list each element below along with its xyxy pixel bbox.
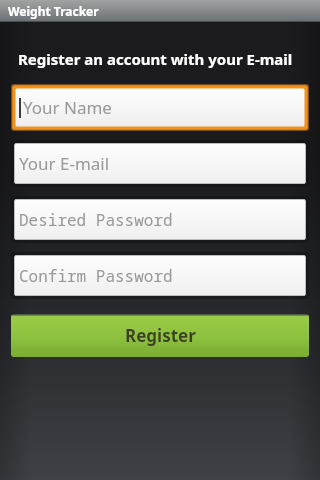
button[interactable]: Your E-mail xyxy=(11,140,309,187)
button[interactable]: Desired Password xyxy=(11,196,309,243)
staticText: Your E-mail xyxy=(19,152,110,175)
staticText: Your Name xyxy=(23,96,112,119)
staticText: Weight Tracker xyxy=(8,3,99,19)
button[interactable]: Your Name xyxy=(11,84,309,131)
button[interactable]: Confirm Password xyxy=(11,252,309,299)
button[interactable]: Register xyxy=(11,314,309,357)
staticText: Register xyxy=(125,324,196,347)
staticText: Register an account with your E-mail xyxy=(18,49,293,69)
staticText: Desired Password xyxy=(19,209,173,231)
staticText: Confirm Password xyxy=(19,265,173,287)
